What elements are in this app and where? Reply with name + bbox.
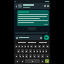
button[interactable]: Back [14, 3, 50, 9]
button[interactable] [25, 54, 28, 58]
button[interactable]: Symbols [15, 59, 20, 63]
button[interactable] [21, 45, 23, 48]
button[interactable] [37, 54, 40, 58]
button[interactable]: Enter [45, 59, 49, 63]
button[interactable] [46, 45, 49, 48]
button[interactable] [24, 45, 26, 48]
button[interactable] [17, 49, 20, 53]
button[interactable]: Period [41, 59, 44, 63]
button[interactable] [19, 54, 21, 58]
button[interactable] [15, 35, 43, 40]
other: Back [15, 5, 18, 8]
button[interactable] [38, 45, 41, 48]
button[interactable] [30, 45, 33, 48]
button[interactable] [15, 45, 17, 48]
button[interactable]: Emoji [21, 59, 24, 63]
button[interactable] [17, 10, 49, 26]
button[interactable]: Backspace [45, 54, 49, 58]
button[interactable] [18, 45, 20, 48]
button[interactable] [36, 49, 38, 53]
button[interactable] [33, 54, 36, 58]
button[interactable]: Send [44, 35, 49, 40]
button[interactable]: Space [25, 59, 40, 63]
button[interactable] [22, 54, 24, 58]
button[interactable] [42, 45, 45, 48]
button[interactable] [45, 49, 47, 53]
button[interactable] [39, 49, 41, 53]
button[interactable] [29, 49, 32, 53]
button[interactable] [34, 45, 37, 48]
button[interactable] [27, 45, 29, 48]
button[interactable] [25, 49, 28, 53]
button[interactable] [41, 54, 44, 58]
button[interactable] [33, 49, 35, 53]
button[interactable] [21, 49, 24, 53]
button[interactable] [42, 49, 44, 53]
button[interactable] [29, 54, 32, 58]
button[interactable]: Shift [15, 54, 18, 58]
